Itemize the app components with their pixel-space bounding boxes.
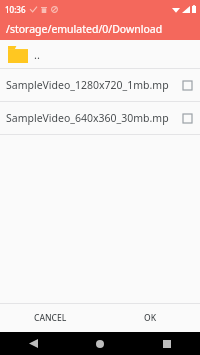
staticText: ..: [34, 47, 40, 62]
button[interactable]: OK: [100, 304, 200, 332]
button[interactable]: SampleVideo_640x360_30mb.mp4: [0, 102, 200, 134]
button[interactable]: SampleVideo_1280x720_1mb.mp4: [0, 69, 200, 101]
button[interactable]: Select SampleVideo_1280x720_1mb.mp4: [174, 72, 200, 98]
staticText: 10:36: [5, 4, 26, 15]
staticText: SampleVideo_1280x720_1mb.mp4: [6, 78, 174, 92]
button[interactable]: Home: [66, 332, 133, 355]
staticText: OK: [144, 312, 157, 324]
button[interactable]: Select SampleVideo_640x360_30mb.mp4: [174, 105, 200, 131]
button[interactable]: ..: [0, 40, 200, 68]
button[interactable]: Recent apps: [133, 332, 200, 355]
button[interactable]: CANCEL: [0, 304, 100, 332]
button[interactable]: Back: [0, 332, 66, 355]
staticText: CANCEL: [34, 312, 67, 324]
staticText: /storage/emulated/0/Download: [6, 22, 163, 36]
staticText: SampleVideo_640x360_30mb.mp4: [6, 111, 174, 125]
